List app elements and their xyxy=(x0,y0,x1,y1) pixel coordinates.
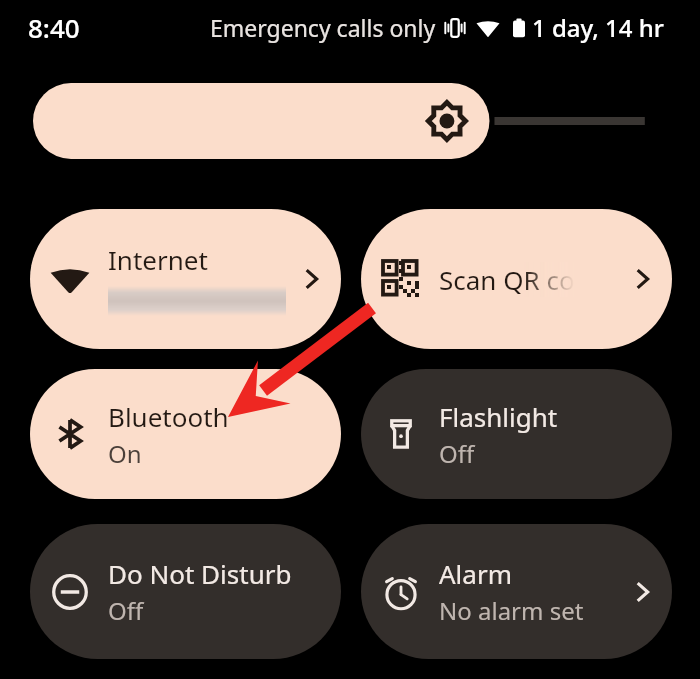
staticText: Internet xyxy=(108,242,208,277)
button[interactable]: Bluetooth xyxy=(30,369,341,499)
button[interactable]: Brightness xyxy=(33,83,667,159)
staticText: Alarm xyxy=(439,556,512,591)
staticText: Flashlight xyxy=(439,399,558,434)
staticText: Scan QR co xyxy=(439,262,575,297)
staticText: Do Not Disturb xyxy=(108,556,292,591)
staticText: 1 day, 14 hr xyxy=(532,11,664,44)
staticText: No alarm set xyxy=(439,594,584,627)
button[interactable]: Scan QR co xyxy=(361,209,672,349)
staticText: On xyxy=(108,437,142,470)
staticText: Off xyxy=(439,437,475,470)
staticText: Off xyxy=(108,594,144,627)
button[interactable]: Alarm xyxy=(361,524,672,659)
button[interactable]: Flashlight xyxy=(361,369,672,499)
button[interactable]: Internet xyxy=(30,209,341,349)
staticText: Emergency calls only xyxy=(210,12,436,43)
staticText: 8:40 xyxy=(28,10,80,45)
staticText: Bluetooth xyxy=(108,399,229,434)
button[interactable]: Do Not Disturb xyxy=(30,524,341,659)
